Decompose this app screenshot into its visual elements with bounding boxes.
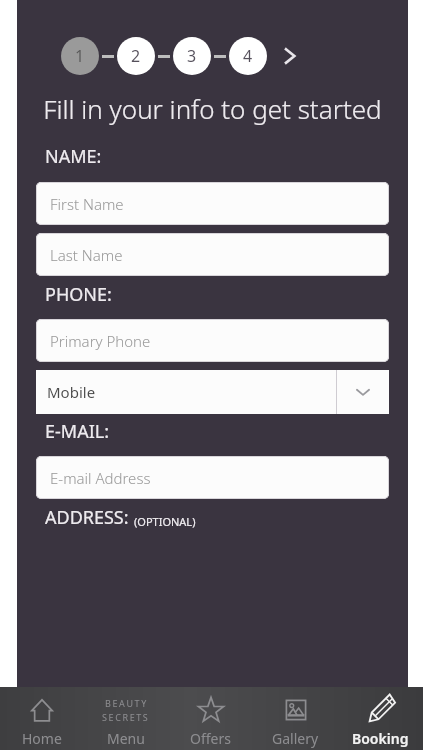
button[interactable]: BEAUTY [84,687,168,750]
button[interactable]: Home [0,687,84,750]
staticText: Last Name [50,245,123,265]
staticText: 2 [131,45,141,67]
button[interactable]: 1 [61,37,99,75]
staticText: SECRETS [102,711,150,723]
button[interactable]: First Name [36,182,389,225]
staticText: Fill in your info to get started [43,91,382,126]
staticText: PHONE: [45,282,112,307]
staticText: Mobile [47,382,96,402]
button[interactable]: Mobile [36,370,389,414]
staticText: Offers [190,729,231,748]
staticText: (OPTIONAL) [134,514,196,529]
button[interactable]: Primary Phone [36,319,389,362]
button[interactable]: 4 [229,37,267,75]
staticText: ADDRESS: [45,505,129,530]
button[interactable]: 2 [117,37,155,75]
button[interactable]: Last Name [36,233,389,276]
button[interactable]: Booking [338,687,423,750]
button[interactable]: Offers [168,687,253,750]
staticText: BEAUTY [105,697,148,709]
staticText: Home [22,729,62,748]
staticText: Gallery [272,729,319,748]
staticText: NAME: [45,144,102,169]
staticText: First Name [50,194,124,214]
staticText: Booking [352,729,409,748]
button[interactable]: E-mail Address [36,456,389,499]
staticText: 1 [75,45,85,67]
staticText: Primary Phone [50,331,151,351]
button[interactable]: Gallery [253,687,338,750]
staticText: E-mail Address [50,468,151,488]
button[interactable]: 3 [173,37,211,75]
button[interactable]: Next step [277,43,303,69]
staticText: 4 [243,45,253,67]
staticText: 3 [187,45,197,67]
staticText: E-MAIL: [45,419,109,444]
staticText: Menu [107,729,145,748]
